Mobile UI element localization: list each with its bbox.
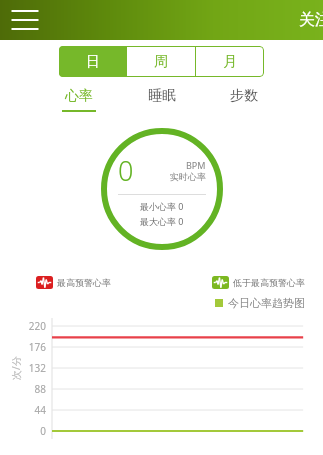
staticText: 日 (86, 53, 100, 71)
staticText: 最高预警心率 (57, 277, 111, 288)
button[interactable]: 心率 (58, 83, 100, 116)
staticText: 最大心率 0 (140, 215, 184, 227)
staticText: 睡眠 (148, 87, 176, 105)
staticText: 月 (223, 53, 237, 71)
staticText: 步数 (230, 87, 258, 105)
staticText: BPM (186, 159, 206, 171)
staticText: 今日心率趋势图 (228, 296, 305, 310)
button[interactable]: Menu (8, 3, 42, 37)
button[interactable]: 周 (127, 46, 195, 77)
button[interactable]: 最高预警心率 (36, 276, 111, 289)
staticText: 132 (28, 361, 46, 375)
button[interactable]: 低于最高预警心率 (212, 276, 305, 289)
staticText: 次/分 (9, 356, 23, 380)
button[interactable]: 月 (196, 46, 264, 77)
button[interactable]: 步数 (223, 83, 265, 114)
button[interactable]: 日 (59, 46, 126, 77)
staticText: 实时心率 (170, 171, 206, 182)
button[interactable]: 睡眠 (141, 83, 183, 114)
staticText: 220 (28, 319, 46, 333)
staticText: 低于最高预警心率 (233, 277, 305, 288)
button[interactable]: 关注 (299, 10, 323, 30)
staticText: 44 (34, 403, 46, 417)
staticText: 0 (40, 424, 46, 438)
staticText: 176 (28, 340, 46, 354)
staticText: 周 (154, 53, 168, 71)
staticText: 最小心率 0 (140, 200, 184, 212)
staticText: 心率 (65, 87, 93, 105)
staticText: 88 (34, 382, 46, 396)
button[interactable]: Heart rate (101, 128, 223, 250)
staticText: 0 (118, 152, 134, 189)
